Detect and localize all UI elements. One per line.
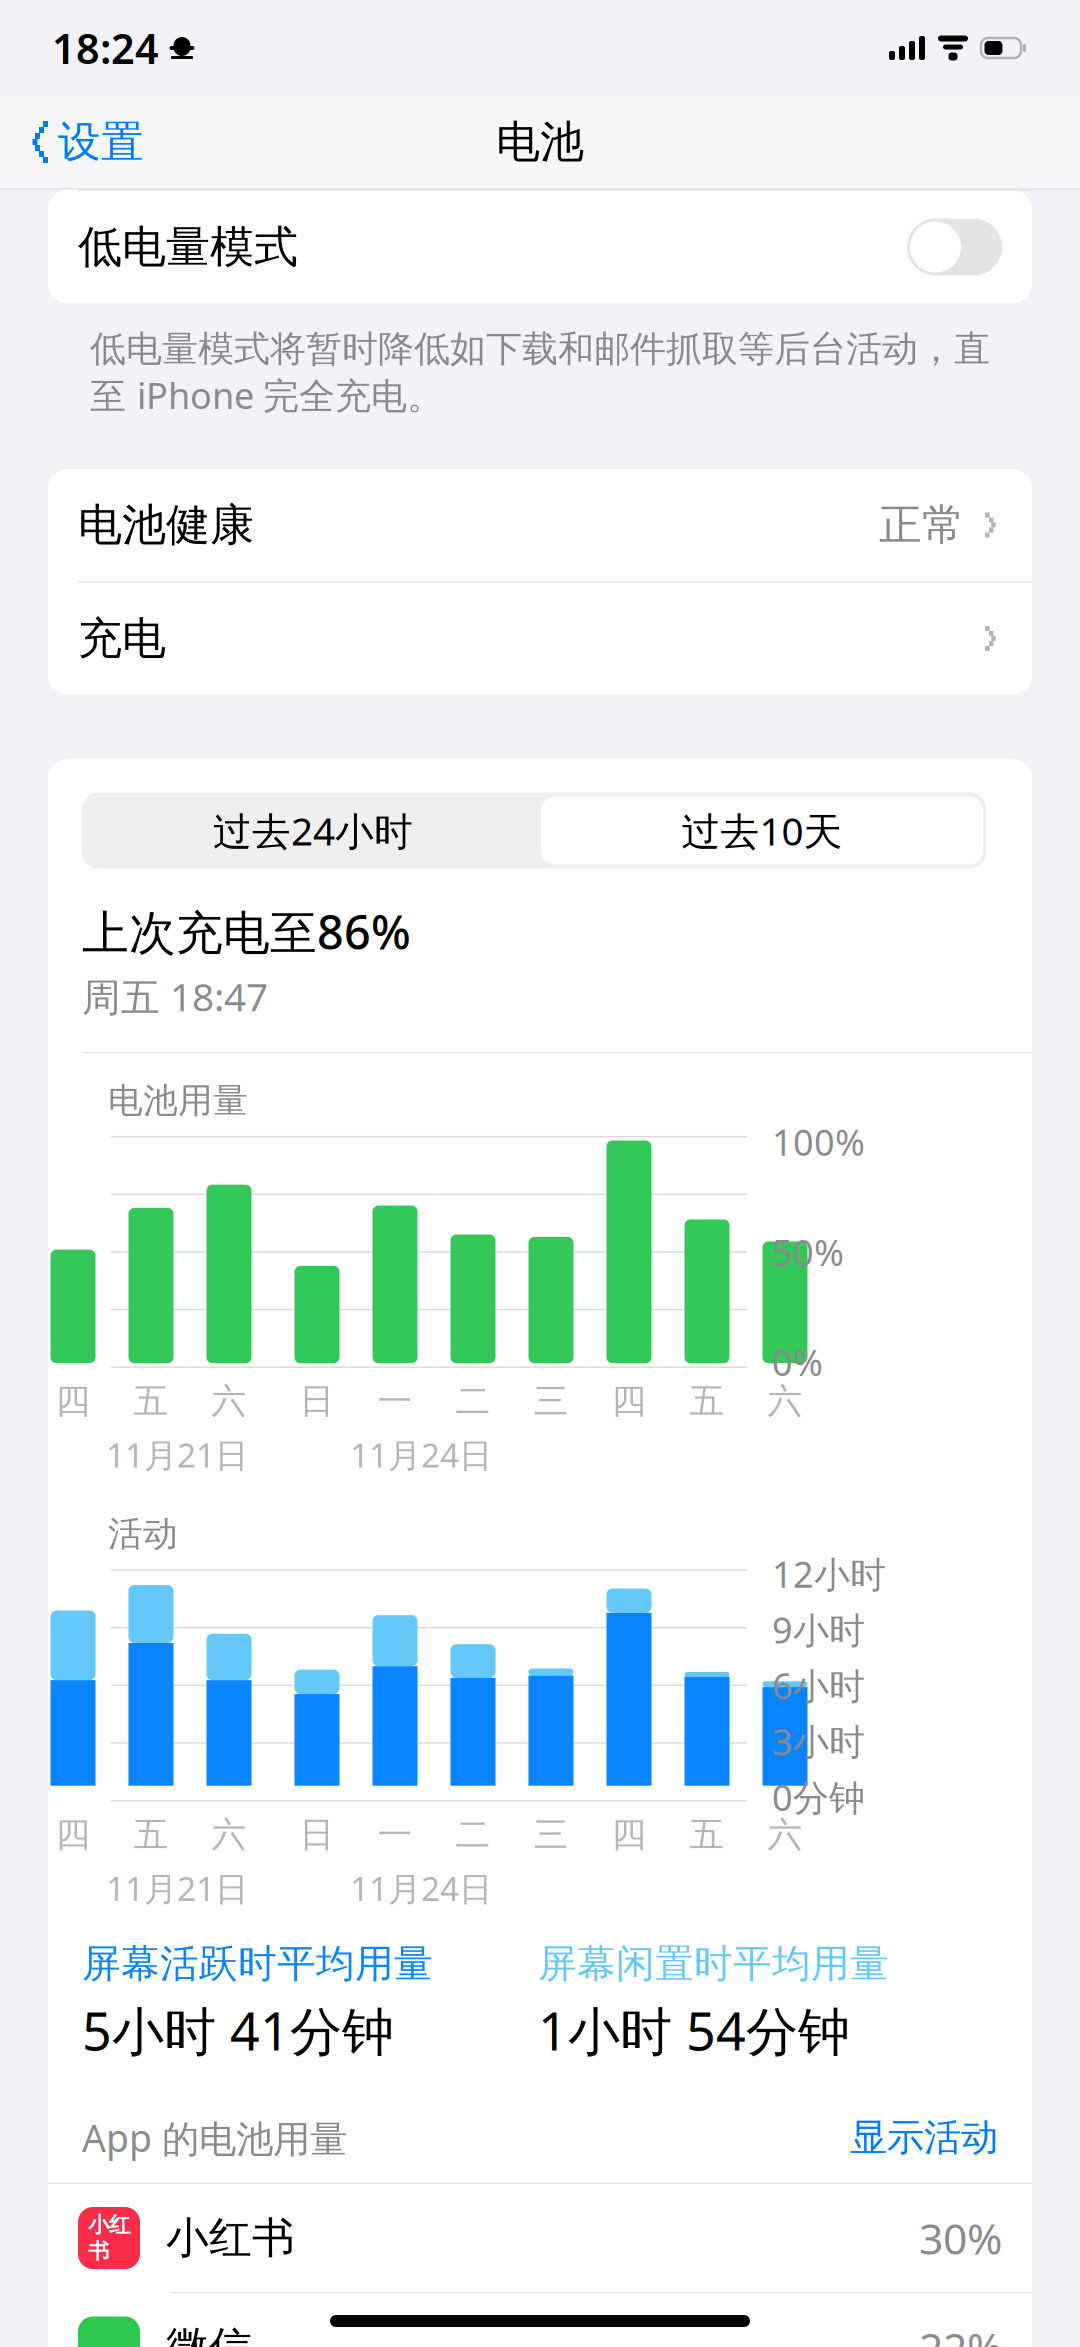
staticText: 低电量模式将暂时降低如下载和邮件抓取等后台活动，直至 iPhone 完全充电。 — [90, 327, 990, 419]
staticText: 四 — [55, 1380, 90, 1422]
staticText: 0分钟 — [772, 1773, 865, 1821]
staticText: 一 — [377, 1380, 412, 1422]
staticText: 六 — [767, 1813, 802, 1856]
staticText: 显示活动 — [850, 2115, 998, 2161]
button[interactable]: 过去24小时 — [85, 792, 541, 868]
staticText: 二 — [455, 1380, 490, 1422]
button[interactable]: 充电 — [48, 582, 1032, 694]
staticText: 11月21日 — [106, 1866, 248, 1910]
staticText: 1小时 54分钟 — [538, 1996, 850, 2065]
staticText: 四 — [611, 1380, 646, 1422]
button[interactable]: 小红书 — [48, 2184, 1032, 2292]
staticText: 六 — [211, 1380, 246, 1422]
staticText: 电池健康 — [78, 498, 254, 552]
staticText: 小红书 — [166, 2212, 295, 2264]
button[interactable]: 低电量模式 — [48, 191, 1032, 303]
staticText: 电池 — [496, 115, 584, 169]
staticText: 屏幕活跃时平均用量 — [82, 1940, 433, 1988]
button[interactable]: 设置 — [0, 106, 144, 178]
staticText: 50% — [772, 1228, 844, 1276]
staticText: 3小时 — [772, 1717, 865, 1765]
staticText: 上次充电至86% — [82, 900, 411, 962]
staticText: 0% — [772, 1338, 823, 1386]
staticText: 22% — [919, 2319, 1002, 2347]
staticText: 周五 18:47 — [82, 970, 268, 1022]
staticText: 五 — [133, 1380, 168, 1422]
button[interactable] — [48, 2293, 1032, 2347]
staticText: 小红书 — [88, 2212, 130, 2264]
staticText: 9小时 — [772, 1606, 865, 1653]
staticText: 100% — [772, 1118, 865, 1166]
staticText: 11月24日 — [350, 1866, 492, 1910]
staticText: 过去24小时 — [213, 805, 413, 856]
staticText: 11月21日 — [106, 1432, 248, 1477]
staticText: 屏幕闲置时平均用量 — [538, 1940, 889, 1988]
staticText: 30% — [919, 2210, 1002, 2266]
staticText: 低电量模式 — [78, 220, 298, 274]
staticText: App 的电池用量 — [82, 2113, 347, 2162]
staticText: 5小时 41分钟 — [82, 1996, 394, 2065]
staticText: 18:24 — [52, 21, 159, 75]
staticText: 一 — [377, 1813, 412, 1856]
staticText: 电池用量 — [108, 1079, 248, 1122]
staticText: 11月24日 — [350, 1432, 492, 1477]
staticText: 五 — [689, 1380, 724, 1422]
staticText: 五 — [689, 1813, 724, 1856]
button[interactable]: 显示活动 — [850, 2115, 998, 2161]
staticText: 充电 — [78, 611, 166, 665]
staticText: 三 — [533, 1380, 568, 1422]
staticText: 12小时 — [772, 1550, 886, 1598]
staticText: 正常 — [879, 499, 965, 551]
staticText: 设置 — [58, 116, 144, 168]
staticText: 四 — [55, 1813, 90, 1856]
button[interactable]: 电池健康 — [48, 469, 1032, 581]
button[interactable]: 过去10天 — [541, 796, 983, 864]
staticText: 六 — [767, 1380, 802, 1422]
staticText: 四 — [611, 1813, 646, 1856]
staticText: 日 — [299, 1380, 334, 1422]
staticText: 日 — [299, 1813, 334, 1856]
staticText: 五 — [133, 1813, 168, 1856]
staticText: 6小时 — [772, 1661, 865, 1709]
staticText: 微信 — [166, 2321, 252, 2347]
staticText: 二 — [455, 1813, 490, 1856]
staticText: 过去10天 — [681, 805, 842, 856]
staticText: 三 — [533, 1813, 568, 1856]
staticText: 活动 — [108, 1513, 178, 1555]
staticText: 六 — [211, 1813, 246, 1856]
